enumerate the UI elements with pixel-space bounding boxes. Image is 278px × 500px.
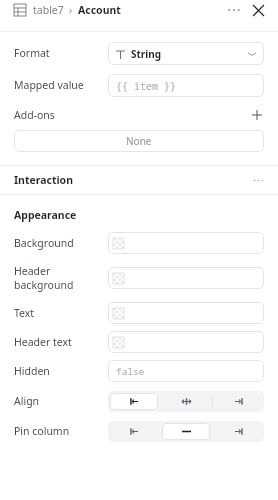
staticText: Align — [14, 394, 40, 408]
staticText: {{ item }} — [116, 79, 176, 93]
button[interactable]: String — [108, 42, 264, 65]
staticText: Hidden — [14, 364, 50, 378]
button[interactable] — [108, 302, 264, 324]
staticText: None — [126, 134, 152, 148]
staticText: String — [131, 47, 162, 61]
staticText: Header text — [14, 335, 72, 349]
button[interactable]: Add add-on — [248, 106, 266, 124]
button[interactable] — [108, 267, 264, 289]
button[interactable]: None — [14, 130, 264, 152]
button[interactable]: Pin right — [214, 423, 262, 440]
staticText: Pin column — [14, 424, 70, 438]
button[interactable]: Align left — [110, 393, 158, 410]
staticText: Mapped value — [14, 78, 84, 92]
staticText: Text — [14, 306, 35, 320]
button[interactable]: {{ item }} — [108, 74, 264, 97]
staticText: false — [116, 365, 145, 378]
button[interactable]: Align right — [214, 393, 262, 410]
button[interactable] — [108, 232, 264, 254]
button[interactable] — [108, 331, 264, 353]
staticText: Format — [14, 46, 50, 60]
staticText: Add-ons — [14, 108, 55, 122]
staticText: Interaction — [14, 173, 74, 187]
button[interactable]: Close — [248, 0, 268, 20]
button[interactable]: Align center — [162, 393, 210, 410]
staticText: Appearance — [14, 208, 77, 222]
button[interactable]: No pin — [162, 423, 210, 440]
staticText: Header background — [14, 264, 74, 292]
button[interactable]: More options — [224, 0, 244, 20]
staticText: Account — [78, 3, 121, 17]
staticText: › — [69, 3, 73, 17]
button[interactable]: Pin left — [110, 423, 158, 440]
button[interactable]: Interaction options — [249, 171, 267, 189]
staticText: table7 — [33, 3, 64, 17]
staticText: Background — [14, 236, 74, 250]
button[interactable]: false — [108, 360, 264, 382]
